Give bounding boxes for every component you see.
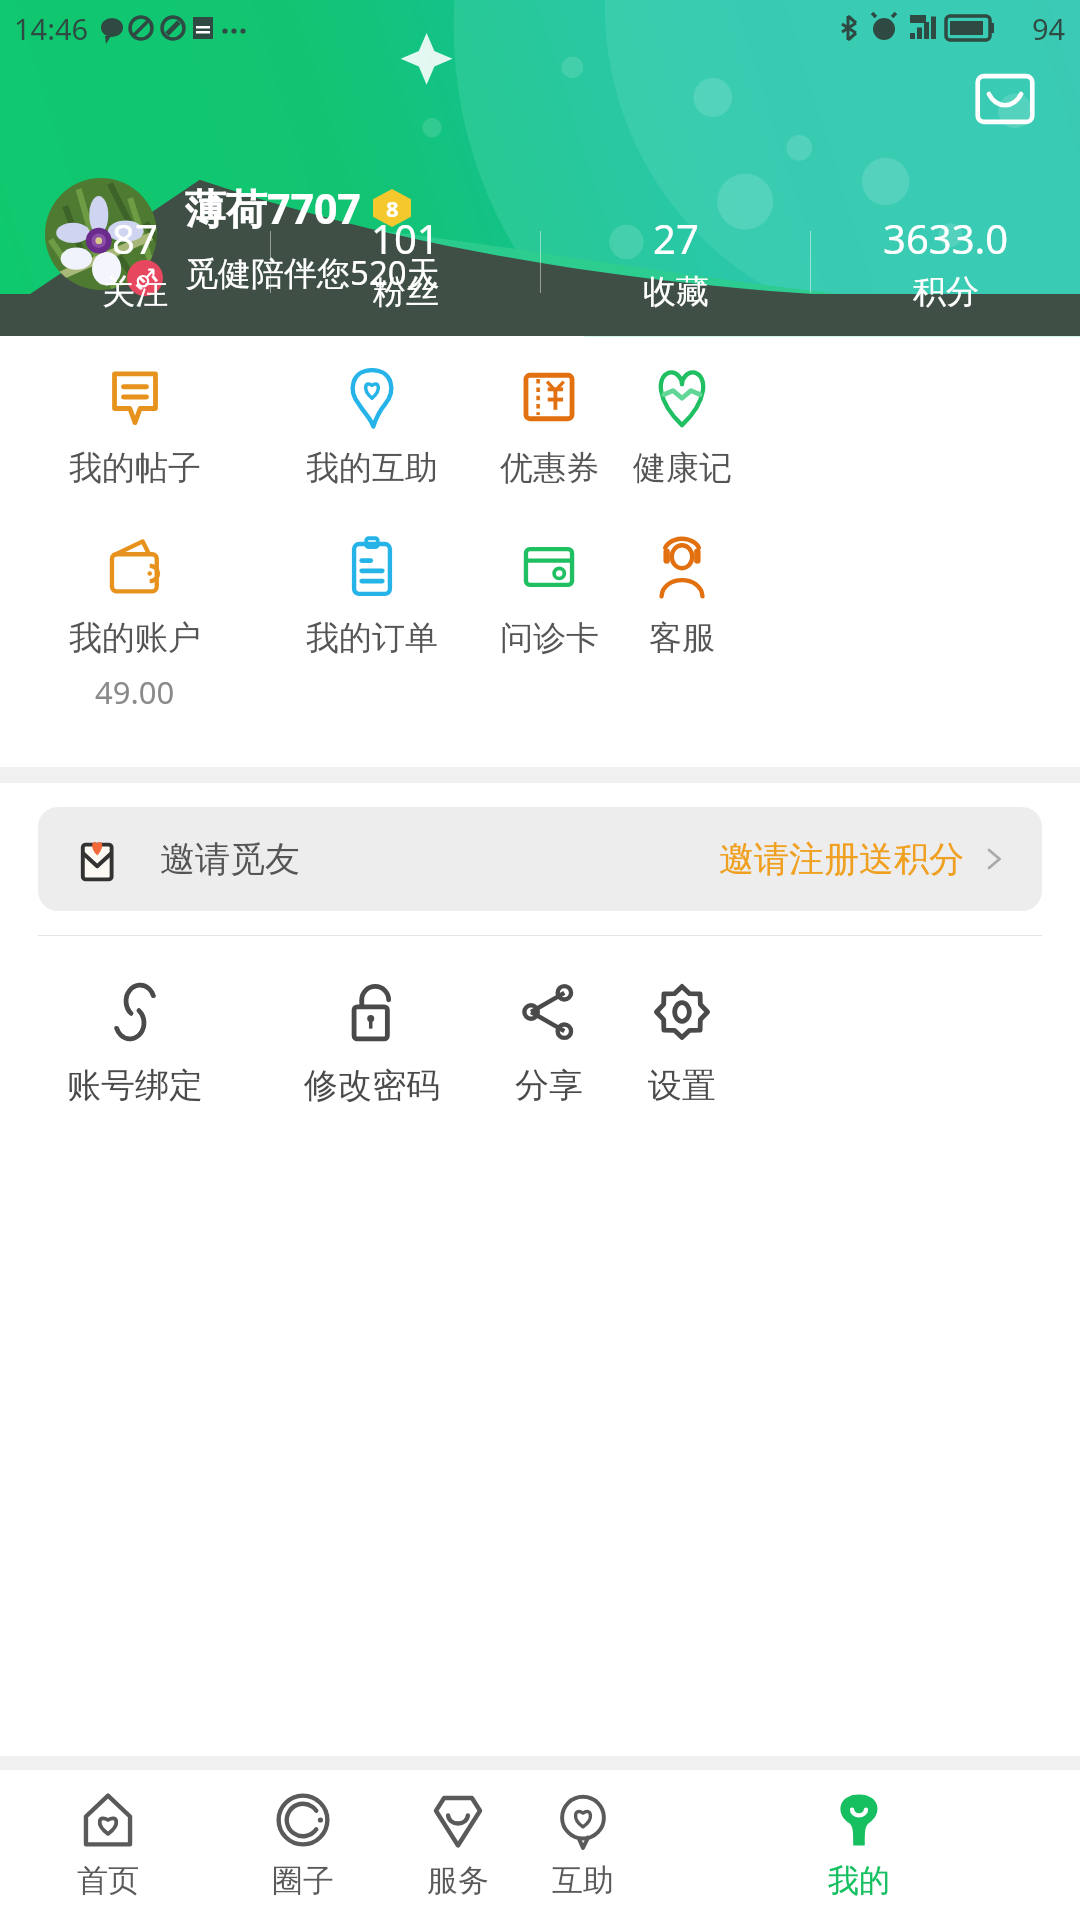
- staticText: 服务: [427, 1861, 489, 1900]
- button[interactable]: 邀请觅友: [38, 807, 1042, 911]
- button[interactable]: Messages: [974, 68, 1036, 130]
- staticText: 我的互助: [306, 447, 438, 489]
- staticText: 粉丝: [373, 271, 439, 313]
- button[interactable]: 设置: [625, 980, 739, 1107]
- button[interactable]: 我的订单: [270, 535, 473, 659]
- staticText: 收藏: [643, 271, 709, 313]
- staticText: 圈子: [272, 1861, 334, 1900]
- staticText: 关注: [102, 271, 168, 313]
- staticText: 设置: [648, 1064, 716, 1107]
- button[interactable]: 我的账户: [0, 535, 270, 713]
- staticText: 薄荷7707: [185, 180, 361, 236]
- staticText: 我的帖子: [69, 447, 201, 489]
- button[interactable]: 我的帖子: [0, 365, 270, 489]
- button[interactable]: 客服: [625, 535, 739, 659]
- button[interactable]: 我的: [638, 1770, 1080, 1920]
- button[interactable]: 服务: [389, 1770, 527, 1920]
- staticText: 账号绑定: [67, 1064, 203, 1107]
- staticText: 8: [386, 193, 399, 223]
- staticText: 3633.0: [883, 211, 1009, 265]
- staticText: 优惠券: [500, 447, 599, 489]
- staticText: 首页: [77, 1861, 139, 1900]
- staticText: 49.00: [95, 671, 175, 713]
- staticText: 修改密码: [304, 1064, 440, 1107]
- button[interactable]: 互助: [527, 1770, 638, 1920]
- staticText: 我的: [828, 1861, 890, 1900]
- button[interactable]: 健康记: [625, 365, 739, 489]
- staticText: 客服: [649, 617, 715, 659]
- staticText: 27: [653, 211, 699, 265]
- staticText: 健康记: [633, 447, 732, 489]
- button[interactable]: 87: [0, 211, 270, 313]
- button[interactable]: [45, 178, 157, 290]
- staticText: 分享: [515, 1064, 583, 1107]
- button[interactable]: 优惠券: [473, 365, 625, 489]
- staticText: 14:46: [14, 9, 89, 48]
- staticText: 邀请注册送积分: [719, 837, 964, 881]
- button[interactable]: 我的互助: [270, 365, 473, 489]
- staticText: 互助: [552, 1861, 614, 1900]
- button[interactable]: 修改密码: [270, 980, 473, 1107]
- button[interactable]: 101: [271, 211, 540, 313]
- staticText: 94: [1032, 9, 1066, 48]
- staticText: 问诊卡: [500, 617, 599, 659]
- button[interactable]: 27: [541, 211, 810, 313]
- staticText: 我的订单: [306, 617, 438, 659]
- staticText: 觅健陪伴您520天: [185, 250, 440, 295]
- button[interactable]: 3633.0: [811, 211, 1080, 313]
- button[interactable]: 圈子: [216, 1770, 389, 1920]
- staticText: 101: [371, 211, 440, 265]
- button[interactable]: 问诊卡: [473, 535, 625, 659]
- button[interactable]: 账号绑定: [0, 980, 270, 1107]
- button[interactable]: 首页: [0, 1770, 216, 1920]
- button[interactable]: 分享: [473, 980, 625, 1107]
- staticText: 邀请觅友: [160, 837, 300, 881]
- staticText: 87: [112, 211, 158, 265]
- staticText: 我的账户: [69, 617, 201, 659]
- staticText: 积分: [913, 271, 979, 313]
